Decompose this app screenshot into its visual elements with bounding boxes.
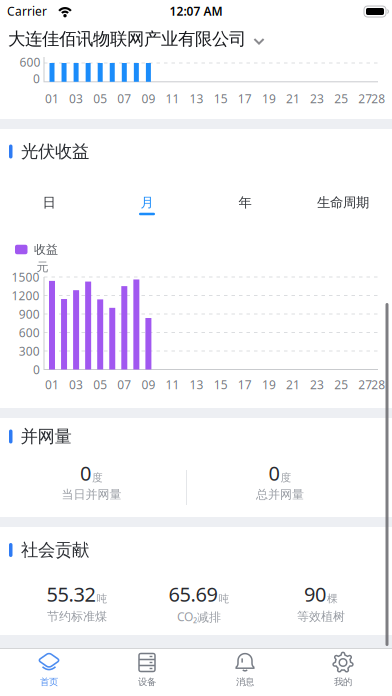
staticText: Carrier [7,3,47,19]
button[interactable]: 生命周期 [294,189,392,221]
staticText: 日 [42,194,55,211]
staticText: 07 [117,377,131,393]
button[interactable]: 首页 [0,649,98,696]
staticText: 收益 [34,242,58,257]
staticText: 并网量 [20,426,71,447]
button[interactable]: 日 [0,189,98,221]
staticText: 年 [238,194,251,211]
staticText: 元 [36,260,48,274]
staticText: 28 [371,90,385,106]
staticText: 28 [371,377,385,393]
staticText: 90 [304,581,326,607]
staticText: 27 [358,90,372,106]
staticText: 01 [45,90,59,106]
button[interactable]: 设备 [98,649,196,696]
staticText: 13 [190,377,204,393]
staticText: 17 [238,377,252,393]
staticText: 03 [69,377,83,393]
staticText: 0 [33,361,40,377]
staticText: 1500 [11,269,39,285]
staticText: 生命周期 [317,194,369,211]
staticText: 月 [140,194,153,211]
staticText: 23 [310,90,324,106]
staticText: 05 [93,377,107,393]
staticText: 21 [286,377,300,393]
staticText: 600 [19,54,40,70]
staticText: 05 [93,90,107,106]
button[interactable]: 大连佳佰讯物联网产业有限公司 [0,21,392,57]
staticText: 21 [286,90,300,106]
staticText: 消息 [236,676,254,688]
staticText: 等效植树 [297,609,345,624]
staticText: 节约标准煤 [47,609,107,624]
staticText: 03 [69,90,83,106]
staticText: 社会贡献 [21,539,89,561]
staticText: 23 [310,377,324,393]
staticText: 27 [358,377,372,393]
staticText: 吨 [218,592,229,605]
staticText: 600 [19,324,40,340]
staticText: 吨 [96,592,107,605]
staticText: 1200 [11,287,39,303]
staticText: 当日并网量 [61,487,121,502]
staticText: 55.32 [46,581,95,607]
staticText: 度 [92,471,103,484]
staticText: 我的 [334,676,352,688]
staticText: 07 [117,90,131,106]
staticText: 19 [262,90,276,106]
staticText: 09 [141,377,155,393]
staticText: 25 [334,90,348,106]
button[interactable]: 月 [98,189,196,221]
staticText: 总并网量 [256,487,304,502]
staticText: 01 [45,377,59,393]
staticText: 0 [268,460,279,486]
staticText: 17 [238,90,252,106]
staticText: 65.69 [168,581,217,607]
staticText: 19 [262,377,276,393]
staticText: CO₂减排 [177,608,221,624]
staticText: 12:07 AM [169,3,222,19]
button[interactable]: 消息 [196,649,294,696]
staticText: 15 [214,377,228,393]
staticText: 900 [19,306,40,322]
button[interactable]: 我的 [294,649,392,696]
staticText: 0 [80,460,91,486]
staticText: 棵 [327,592,338,605]
staticText: 09 [141,90,155,106]
button[interactable]: 年 [196,189,294,221]
staticText: 300 [19,343,40,359]
staticText: 13 [190,90,204,106]
staticText: 设备 [138,676,156,688]
staticText: 首页 [40,676,58,688]
staticText: 光伏收益 [21,141,89,162]
staticText: 15 [214,90,228,106]
staticText: 25 [334,377,348,393]
staticText: 11 [165,377,179,393]
staticText: 0 [33,70,40,86]
staticText: 11 [165,90,179,106]
staticText: 大连佳佰讯物联网产业有限公司 [8,28,246,50]
staticText: 度 [280,471,291,484]
